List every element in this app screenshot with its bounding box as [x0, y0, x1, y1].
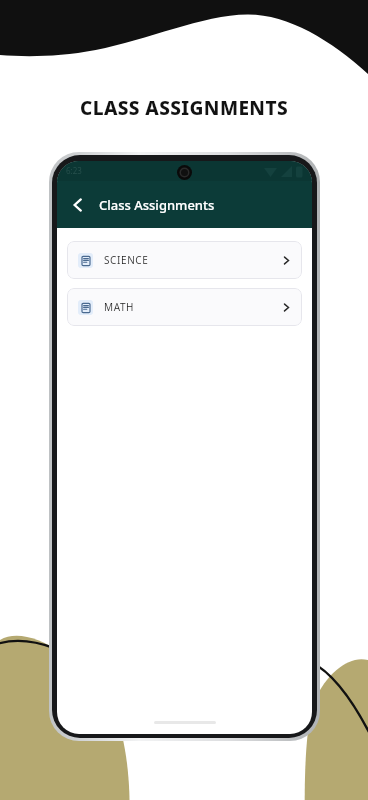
staticText: Class Assignments [99, 196, 215, 214]
staticText: 6:23 [66, 165, 82, 176]
button[interactable]: SCIENCE [67, 241, 302, 279]
button[interactable]: MATH [67, 288, 302, 326]
button[interactable]: Back [63, 190, 93, 220]
staticText: CLASS ASSIGNMENTS [0, 95, 368, 121]
staticText: MATH [104, 300, 135, 314]
staticText: SCIENCE [104, 253, 149, 267]
